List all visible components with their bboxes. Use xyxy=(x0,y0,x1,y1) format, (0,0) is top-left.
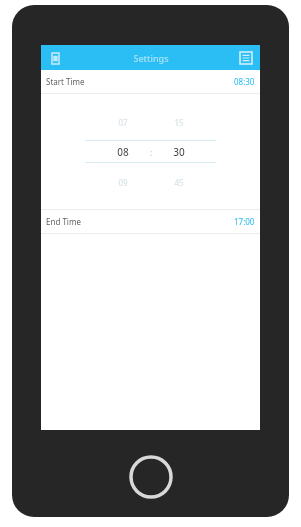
button[interactable]: Start Time xyxy=(41,70,260,93)
staticText: Start Time xyxy=(46,76,85,87)
button[interactable]: 07 xyxy=(103,99,143,204)
staticText: 30 xyxy=(173,145,185,159)
staticText: Settings xyxy=(133,52,169,64)
staticText: 08:30 xyxy=(234,76,255,87)
staticText: : xyxy=(150,146,153,158)
button[interactable]: Home xyxy=(129,455,173,499)
staticText: 15 xyxy=(174,117,184,128)
button[interactable]: 15 xyxy=(159,99,199,204)
staticText: 07 xyxy=(118,117,128,128)
staticText: 17:00 xyxy=(234,216,255,227)
staticText: End Time xyxy=(46,216,81,227)
button[interactable]: Navigate up xyxy=(45,48,65,68)
staticText: 45 xyxy=(174,177,184,188)
staticText: 08 xyxy=(117,145,129,159)
button[interactable]: Menu xyxy=(236,48,256,68)
staticText: 09 xyxy=(118,177,128,188)
button[interactable]: End Time xyxy=(41,210,260,233)
